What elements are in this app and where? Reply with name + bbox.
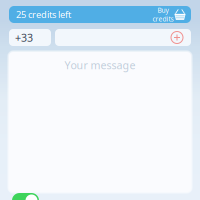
- staticText: Buy: [157, 6, 168, 14]
- staticText: +33: [15, 30, 33, 45]
- staticText: credits: [152, 14, 173, 23]
- button[interactable]: Toggle: [12, 193, 39, 200]
- staticText: Your message: [64, 58, 135, 72]
- staticText: 25 credits left: [16, 8, 71, 21]
- button[interactable]: Add contact: [170, 30, 184, 44]
- button[interactable]: 25 credits left: [9, 6, 191, 23]
